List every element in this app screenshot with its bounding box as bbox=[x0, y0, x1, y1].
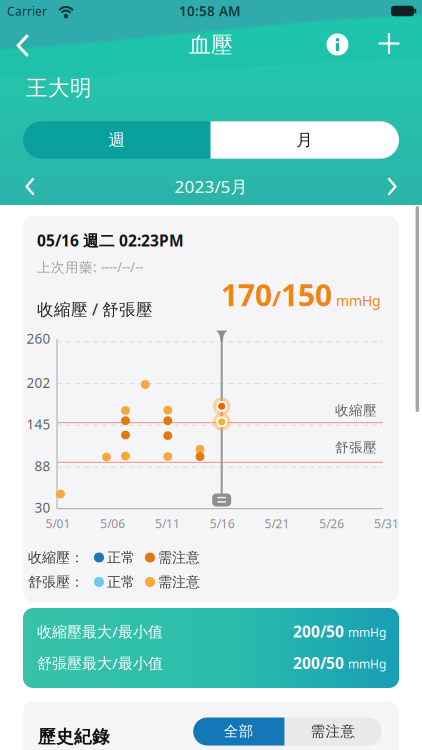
staticText: 上次用藥: ----/--/-- bbox=[37, 258, 143, 276]
staticText: 170/150 bbox=[221, 275, 332, 314]
staticText: 歷史紀錄 bbox=[38, 726, 110, 748]
button[interactable]: 全部 bbox=[193, 717, 284, 745]
staticText: 30 bbox=[34, 499, 50, 516]
staticText: 收縮壓 / 舒張壓 bbox=[37, 298, 153, 320]
button[interactable]: 月 bbox=[210, 121, 399, 159]
button[interactable]: Back bbox=[0, 23, 44, 67]
staticText: 收縮壓： bbox=[28, 549, 84, 566]
staticText: Carrier bbox=[7, 3, 47, 19]
staticText: 5/16 bbox=[210, 515, 235, 531]
staticText: 5/06 bbox=[100, 515, 125, 531]
staticText: 5/01 bbox=[45, 515, 70, 531]
staticText: 血壓 bbox=[189, 31, 233, 58]
staticText: 200/50 bbox=[293, 653, 344, 673]
staticText: mmHg bbox=[348, 624, 386, 640]
staticText: 260 bbox=[26, 329, 50, 347]
staticText: 舒張壓 bbox=[335, 439, 377, 456]
staticText: 200/50 bbox=[293, 621, 344, 642]
staticText: 5/21 bbox=[264, 515, 289, 531]
button[interactable]: Info bbox=[326, 33, 348, 55]
staticText: mmHg bbox=[348, 656, 386, 672]
staticText: 需注意 bbox=[158, 573, 200, 591]
staticText: 月 bbox=[296, 130, 313, 150]
staticText: 202 bbox=[26, 374, 50, 392]
staticText: 5/31 bbox=[374, 515, 399, 531]
button[interactable]: 需注意 bbox=[285, 717, 382, 745]
staticText: 舒張壓最大/最小值 bbox=[37, 653, 163, 673]
staticText: 5/26 bbox=[319, 515, 344, 531]
button[interactable]: 週 bbox=[23, 121, 211, 159]
staticText: 需注意 bbox=[158, 549, 200, 566]
staticText: 5/11 bbox=[155, 515, 180, 531]
staticText: mmHg bbox=[336, 291, 381, 310]
staticText: 2023/5月 bbox=[174, 175, 247, 198]
button[interactable]: Add bbox=[377, 31, 401, 55]
staticText: 王大明 bbox=[26, 75, 92, 101]
staticText: 145 bbox=[26, 415, 50, 433]
staticText: 週 bbox=[108, 130, 125, 150]
staticText: 88 bbox=[34, 457, 50, 475]
staticText: 收縮壓 bbox=[335, 402, 377, 419]
button[interactable]: Next month bbox=[380, 176, 400, 196]
button[interactable]: Previous month bbox=[22, 176, 42, 196]
staticText: 全部 bbox=[224, 723, 254, 740]
staticText: 舒張壓： bbox=[28, 573, 84, 591]
staticText: 10:58 AM bbox=[179, 2, 241, 20]
staticText: 收縮壓最大/最小值 bbox=[37, 621, 163, 641]
staticText: 正常 bbox=[107, 549, 135, 566]
staticText: 05/16 週二 02:23PM bbox=[37, 230, 184, 251]
staticText: 需注意 bbox=[311, 723, 356, 740]
staticText: 正常 bbox=[107, 573, 135, 591]
